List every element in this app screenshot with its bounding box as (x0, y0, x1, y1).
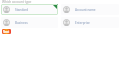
staticText: Enterprise (75, 21, 90, 25)
staticText: Business (15, 21, 28, 25)
staticText: Standard (15, 8, 29, 12)
button[interactable]: Standard (1, 4, 58, 15)
button[interactable]: Business (1, 17, 58, 28)
staticText: Next (3, 30, 10, 34)
button[interactable]: Enterprise (61, 17, 119, 28)
button[interactable]: Next (2, 29, 11, 34)
staticText: Which account type (2, 0, 32, 4)
button[interactable]: Account name (61, 4, 119, 15)
staticText: Account name (75, 8, 96, 12)
